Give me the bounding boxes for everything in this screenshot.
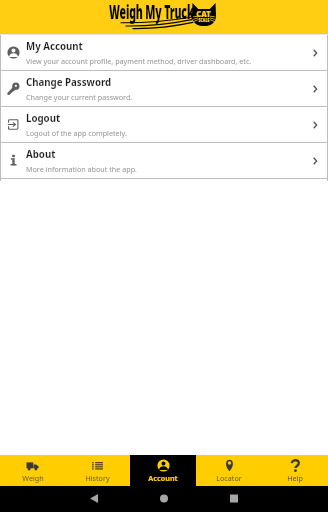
button[interactable]: Help — [262, 455, 328, 486]
button[interactable]: Weigh — [0, 455, 65, 486]
staticText: History — [85, 473, 110, 483]
button[interactable]: Change Password — [0, 71, 328, 106]
staticText: Change your current password. — [26, 92, 133, 102]
button[interactable]: Home — [158, 493, 170, 505]
staticText: More information about the app. — [26, 164, 138, 174]
button[interactable]: My Account — [0, 35, 328, 70]
staticText: My Account — [26, 40, 83, 53]
button[interactable]: Logout — [0, 107, 328, 142]
button[interactable]: Recents — [228, 493, 240, 505]
staticText: Logout — [26, 112, 61, 125]
staticText: View your account profile, payment metho… — [26, 56, 252, 66]
staticText: CAT — [196, 7, 212, 19]
staticText: SCALE — [198, 17, 210, 23]
staticText: About — [26, 148, 56, 161]
staticText: Change Password — [26, 76, 112, 89]
button[interactable]: Account — [130, 455, 196, 486]
staticText: Locator — [216, 473, 242, 483]
button[interactable]: History — [65, 455, 130, 486]
button[interactable]: About — [0, 143, 328, 178]
staticText: Logout of the app completely. — [26, 128, 127, 138]
staticText: Weigh My Truck — [109, 0, 194, 25]
staticText: Help — [287, 473, 303, 483]
button[interactable]: Locator — [196, 455, 262, 486]
staticText: Weigh — [22, 473, 44, 483]
button[interactable]: Back — [88, 493, 100, 505]
staticText: Account — [148, 473, 178, 483]
